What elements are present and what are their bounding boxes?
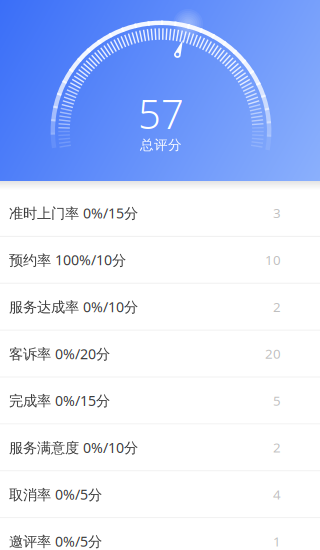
staticText: 10 (265, 251, 281, 269)
button[interactable]: 取消率 0%/5分 (0, 471, 320, 517)
staticText: 准时上门率 0%/15分 (9, 203, 138, 223)
staticText: 5 (273, 391, 281, 410)
staticText: 客诉率 0%/20分 (9, 344, 110, 363)
staticText: 总评分 (140, 136, 182, 153)
button[interactable]: 服务满意度 0%/10分 (0, 424, 320, 470)
staticText: 邀评率 0%/5分 (9, 532, 102, 550)
staticText: 2 (273, 298, 281, 316)
button[interactable]: 客诉率 0%/20分 (0, 331, 320, 377)
staticText: 1 (273, 532, 281, 550)
staticText: 57 (138, 86, 184, 141)
button[interactable]: 服务达成率 0%/10分 (0, 284, 320, 330)
button[interactable]: 准时上门率 0%/15分 (0, 190, 320, 236)
staticText: 20 (265, 345, 281, 363)
button[interactable]: 预约率 100%/10分 (0, 237, 320, 283)
staticText: 3 (273, 204, 281, 222)
staticText: 4 (273, 485, 281, 503)
button[interactable]: 邀评率 0%/5分 (0, 518, 320, 550)
button[interactable]: 完成率 0%/15分 (0, 378, 320, 423)
staticText: 服务满意度 0%/10分 (9, 438, 138, 457)
staticText: 服务达成率 0%/10分 (9, 297, 138, 316)
staticText: 取消率 0%/5分 (9, 485, 102, 504)
staticText: 完成率 0%/15分 (9, 391, 110, 410)
staticText: 2 (273, 438, 281, 457)
staticText: 预约率 100%/10分 (9, 250, 126, 269)
